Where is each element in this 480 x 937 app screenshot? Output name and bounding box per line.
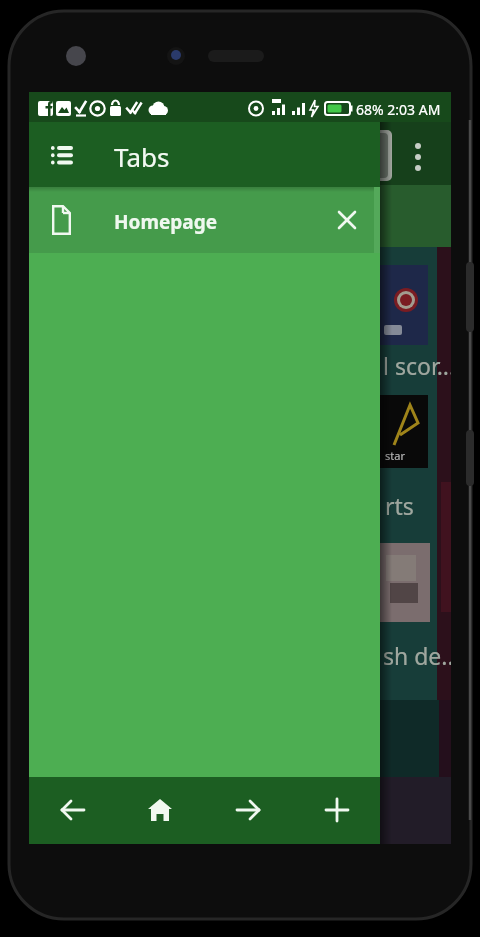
- button[interactable]: [142, 792, 178, 828]
- button[interactable]: [331, 204, 363, 236]
- button[interactable]: [43, 137, 79, 173]
- button[interactable]: [230, 792, 266, 828]
- staticText: rts: [385, 490, 414, 521]
- button[interactable]: [319, 792, 355, 828]
- staticText: star: [385, 448, 405, 463]
- staticText: l scor...: [383, 350, 451, 381]
- staticText: Homepage: [114, 209, 218, 235]
- staticText: sh de...: [383, 640, 451, 671]
- staticText: 68% 2:03 AM: [356, 100, 441, 119]
- button[interactable]: Homepage: [29, 187, 380, 253]
- button[interactable]: [55, 792, 91, 828]
- staticText: Tabs: [114, 139, 170, 174]
- button[interactable]: [406, 140, 430, 174]
